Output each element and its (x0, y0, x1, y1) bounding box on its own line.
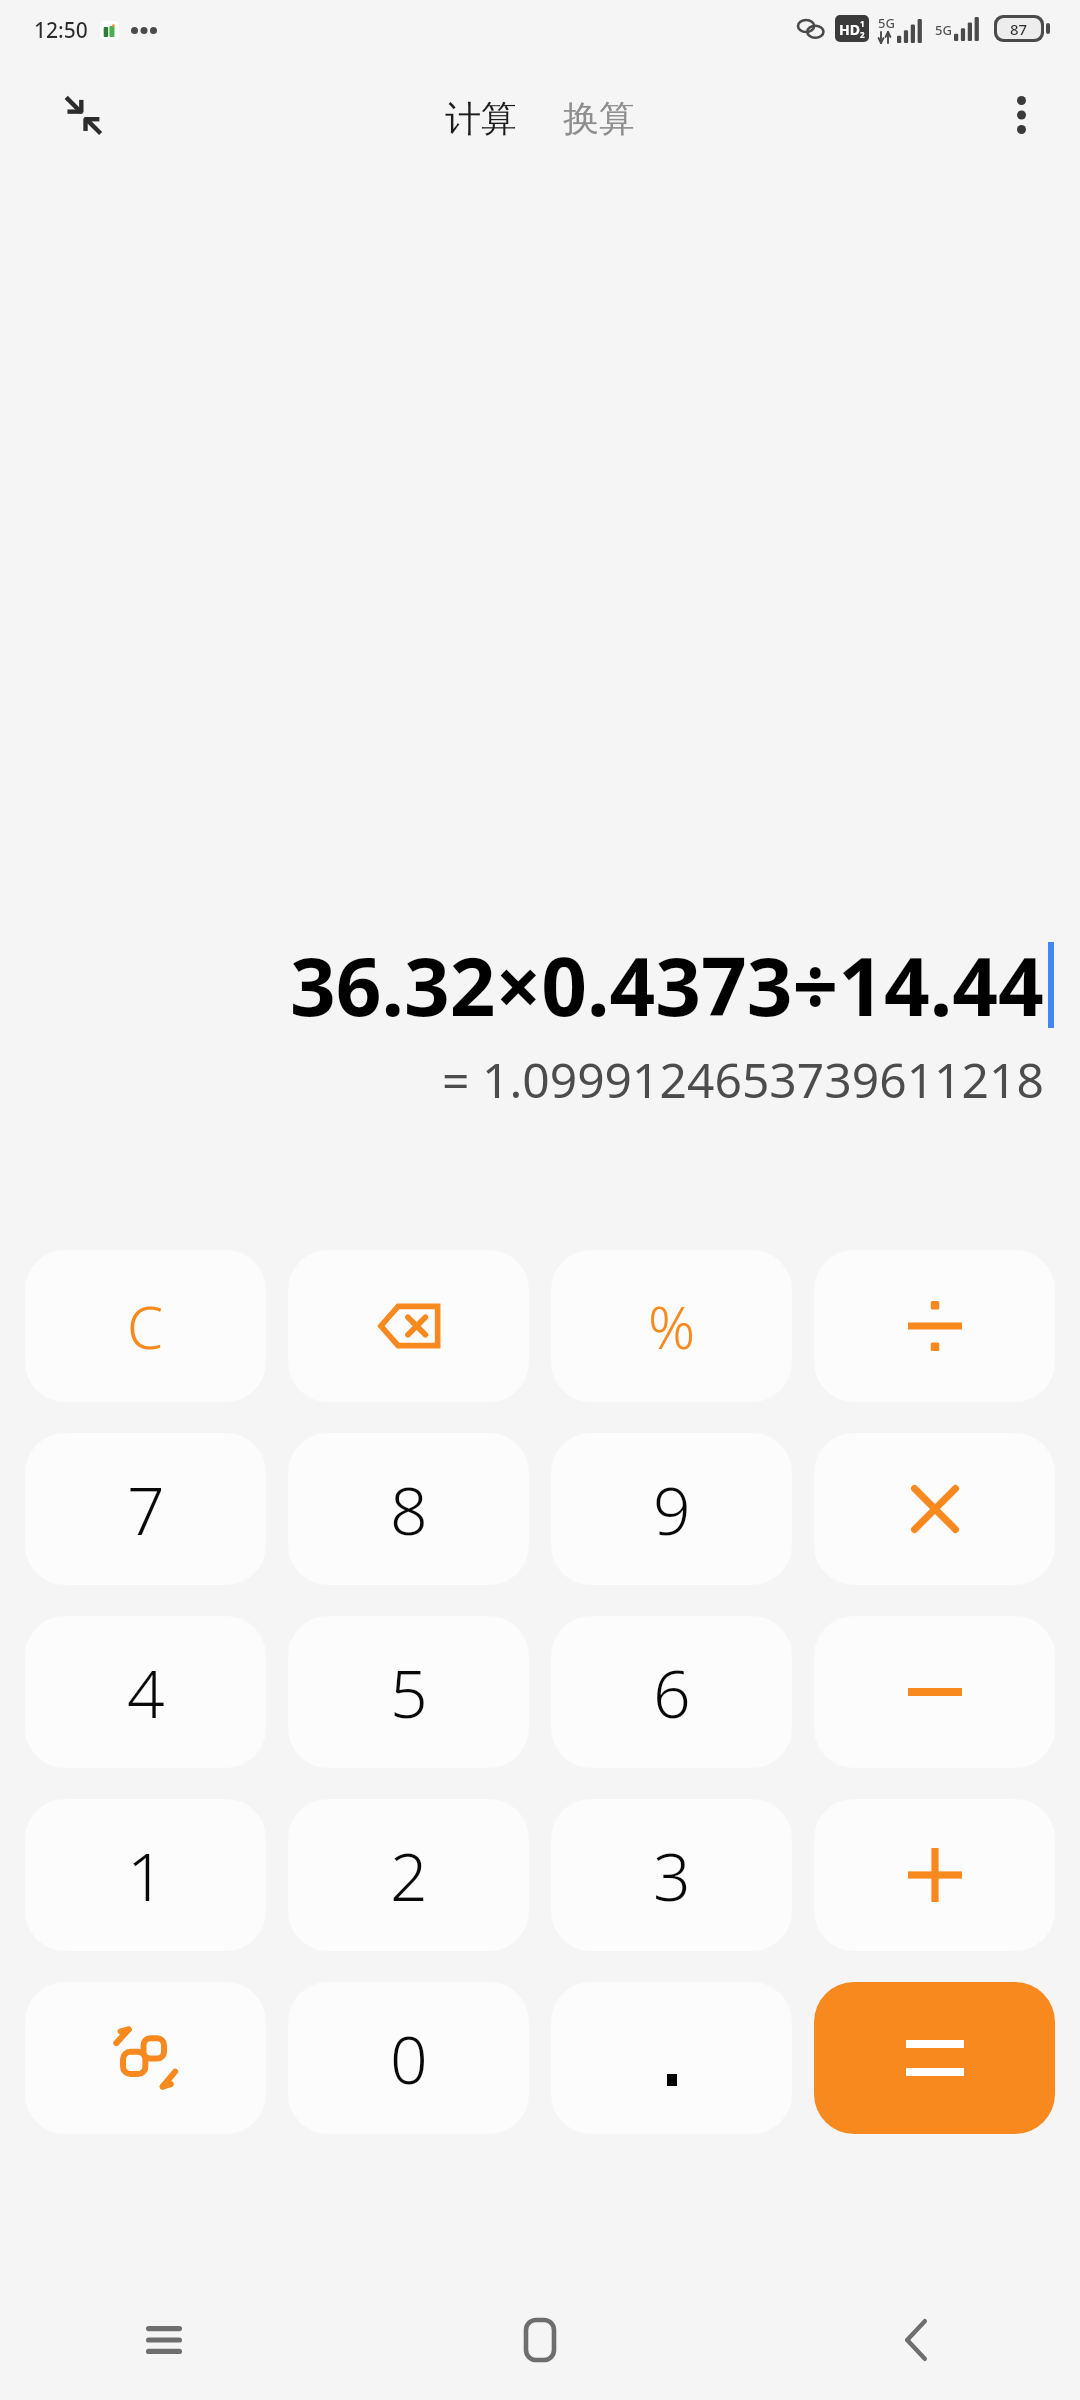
button[interactable]: Equals (814, 1982, 1055, 2134)
button[interactable]: 8 (288, 1433, 529, 1585)
button[interactable]: 4 (25, 1616, 266, 1768)
button[interactable] (814, 1616, 1055, 1768)
staticText: 计算 (445, 96, 517, 141)
staticText: 5 (390, 1647, 428, 1737)
staticText: 36.32×0.4373÷14.44 (290, 930, 1044, 1039)
staticText: 4 (127, 1647, 165, 1737)
staticText: 87 (1010, 19, 1028, 39)
button[interactable]: % (551, 1250, 792, 1402)
staticText: 5G (878, 14, 895, 32)
button[interactable]: 0 (288, 1982, 529, 2134)
button[interactable]: 1 (25, 1799, 266, 1951)
staticText: 8 (390, 1464, 428, 1554)
staticText: 2 (860, 29, 865, 40)
button[interactable]: 5 (288, 1616, 529, 1768)
button[interactable]: Back (872, 2296, 960, 2384)
staticText: 1 (860, 18, 865, 29)
staticText: 1 (127, 1830, 165, 1920)
staticText: % (648, 1287, 696, 1366)
button[interactable]: More options (988, 82, 1054, 148)
button[interactable]: 计算 (435, 88, 527, 149)
staticText: 6 (653, 1647, 691, 1737)
staticText: = 1.0999124653739611218 (442, 1047, 1044, 1112)
staticText: 2 (390, 1830, 428, 1920)
staticText: 3 (653, 1830, 691, 1920)
button[interactable] (814, 1433, 1055, 1585)
button[interactable]: 7 (25, 1433, 266, 1585)
button[interactable]: 2 (288, 1799, 529, 1951)
staticText: 换算 (563, 96, 635, 141)
staticText: 5G (935, 21, 952, 39)
staticText: HD (839, 20, 860, 39)
button[interactable] (814, 1250, 1055, 1402)
button[interactable]: 换算 (553, 88, 645, 149)
button[interactable]: Recents (120, 2296, 208, 2384)
staticText: 9 (653, 1464, 691, 1554)
button[interactable]: C (25, 1250, 266, 1402)
button[interactable]: 9 (551, 1433, 792, 1585)
button[interactable]: Collapse (50, 82, 116, 148)
button[interactable]: 6 (551, 1616, 792, 1768)
staticText: 7 (127, 1464, 165, 1554)
staticText: C (127, 1287, 164, 1366)
button[interactable]: 3 (551, 1799, 792, 1951)
button[interactable] (814, 1799, 1055, 1951)
button[interactable]: Home (496, 2296, 584, 2384)
button[interactable] (551, 1982, 792, 2134)
staticText: 12:50 (34, 16, 88, 45)
button[interactable]: Backspace (288, 1250, 529, 1402)
button[interactable]: Scientific mode (25, 1982, 266, 2134)
staticText: 0 (390, 2013, 428, 2103)
